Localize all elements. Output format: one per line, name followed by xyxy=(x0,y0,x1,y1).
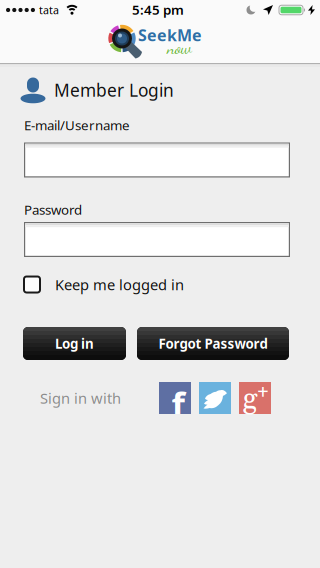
staticText: Password xyxy=(24,201,82,218)
staticText: Sign in with xyxy=(40,388,121,408)
button[interactable]: Keep me logged in xyxy=(24,275,184,294)
staticText: Keep me logged in xyxy=(55,275,184,294)
staticText: g xyxy=(242,381,257,419)
staticText: Log in xyxy=(55,335,94,352)
button[interactable]: Forgot Password xyxy=(137,327,289,360)
button[interactable]: Log in xyxy=(23,327,126,360)
staticText: 5:45 pm xyxy=(132,1,184,18)
button[interactable]: Sign in with Google Plus xyxy=(239,382,271,414)
staticText: E-mail/Username xyxy=(24,116,130,134)
button[interactable]: Sign in with Twitter xyxy=(199,382,231,414)
staticText: Member Login xyxy=(54,78,174,101)
staticText: now xyxy=(167,37,192,58)
staticText: f xyxy=(171,381,184,427)
staticText: SeekMe xyxy=(138,24,202,46)
staticText: + xyxy=(256,379,269,405)
button[interactable]: Sign in with Facebook xyxy=(159,382,191,414)
staticText: tata xyxy=(39,3,59,17)
staticText: Forgot Password xyxy=(158,335,267,352)
